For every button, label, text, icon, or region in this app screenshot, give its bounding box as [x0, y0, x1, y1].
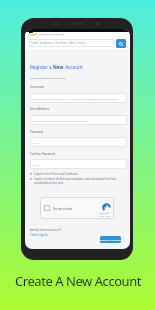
staticText: Username [30, 85, 45, 89]
staticText: Password [30, 130, 44, 134]
staticText: ••••••• [32, 141, 39, 144]
staticText: reCAPTCHA [99, 212, 110, 215]
staticText: A product of Etherscan [39, 32, 65, 35]
staticText: I agree to receive the Bscscan newslette… [34, 177, 124, 185]
staticText: A confirmation code will be sent to this… [32, 119, 88, 122]
staticText: Username has to be from 5 to 30 characte… [32, 97, 118, 100]
staticText: I'm not a robot [53, 207, 73, 211]
button[interactable]: A confirmation code will be sent to this… [30, 115, 127, 125]
staticText: Click to Sign In [30, 233, 48, 237]
staticText: New [53, 64, 64, 70]
staticText: Register a [30, 64, 53, 70]
staticText: Fill out the form to get started. [30, 76, 67, 79]
staticText: I agree to the Terms and Conditions [34, 172, 78, 176]
button[interactable]: ••••••• [30, 137, 127, 147]
button[interactable]: I agree to the Terms and Conditions [30, 172, 124, 176]
button[interactable]: ••••••• [30, 159, 127, 169]
button[interactable]: Search [116, 39, 126, 48]
button[interactable]: I agree to receive the Bscscan newslette… [30, 177, 124, 185]
button[interactable]: Already have an account? [30, 228, 61, 237]
staticText: Create an Account [100, 238, 121, 241]
button[interactable]: Create an Account [100, 236, 121, 243]
staticText: Create A New Account [15, 272, 142, 290]
button[interactable]: I'm not a robot [40, 197, 114, 219]
staticText: Account [64, 64, 83, 70]
button[interactable]: Username has to be from 5 to 30 characte… [30, 93, 127, 103]
staticText: Search by Address / Txn Hash / Block / T… [31, 41, 86, 45]
staticText: Confirm Password [30, 152, 55, 156]
staticText: Privacy - Terms [99, 215, 111, 217]
staticText: Email Address [30, 107, 50, 111]
staticText: Already have an account? [30, 228, 61, 232]
staticText: ••••••• [32, 163, 39, 166]
button[interactable]: Search by Address / Txn Hash / Block / T… [29, 39, 114, 47]
